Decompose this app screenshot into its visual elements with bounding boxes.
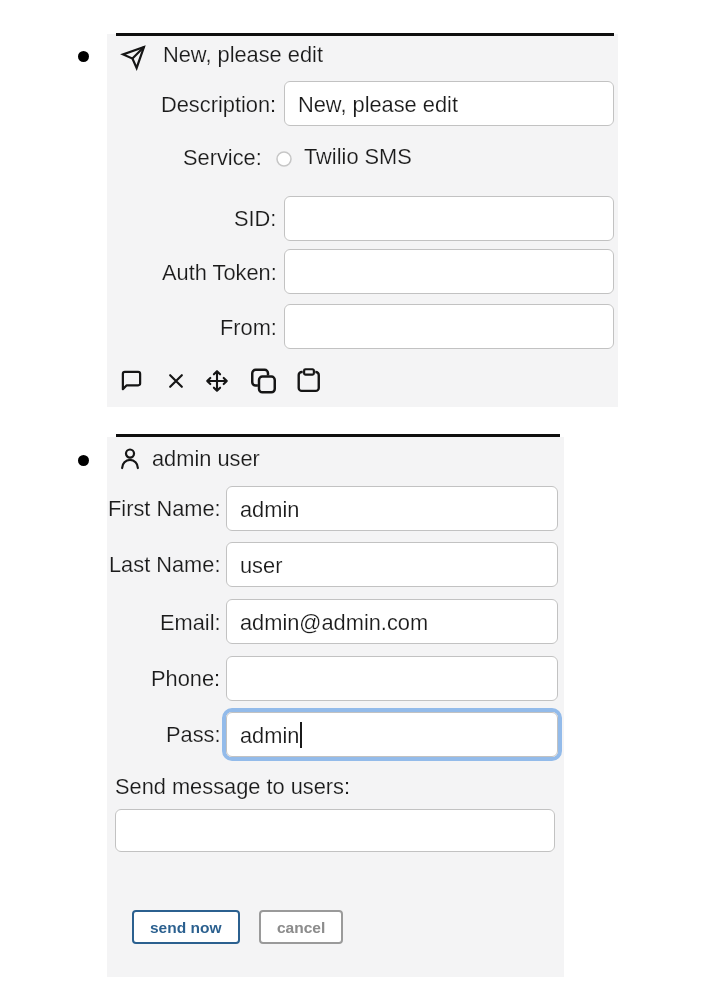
staticText: admin: [240, 723, 300, 747]
button[interactable]: [115, 809, 555, 852]
button[interactable]: New, please edit: [284, 81, 614, 126]
button[interactable]: [296, 366, 322, 392]
staticText: From:: [220, 315, 277, 339]
staticText: Auth Token:: [162, 260, 277, 284]
button[interactable]: user: [226, 542, 558, 587]
staticText: Description:: [161, 92, 277, 116]
staticText: Last Name:: [109, 552, 221, 576]
button[interactable]: cancel: [259, 910, 343, 944]
button[interactable]: [205, 369, 229, 393]
staticText: New, please edit: [163, 42, 323, 66]
button[interactable]: [284, 249, 614, 294]
staticText: send now: [150, 919, 222, 936]
button[interactable]: send now: [132, 910, 240, 944]
button[interactable]: [120, 369, 143, 392]
staticText: Pass:: [166, 722, 221, 746]
staticText: admin: [240, 497, 300, 521]
button[interactable]: [166, 371, 186, 391]
staticText: Phone:: [151, 666, 221, 690]
staticText: admin user: [152, 446, 260, 470]
button[interactable]: admin@admin.com: [226, 599, 558, 644]
button[interactable]: admin: [226, 712, 558, 757]
staticText: Send message to users:: [115, 774, 351, 798]
button[interactable]: admin: [226, 486, 558, 531]
button[interactable]: [121, 45, 146, 70]
staticText: Twilio SMS: [304, 144, 412, 168]
button[interactable]: [284, 304, 614, 349]
button[interactable]: [250, 367, 277, 394]
staticText: Email:: [160, 610, 221, 634]
staticText: cancel: [277, 919, 326, 936]
staticText: First Name:: [108, 496, 221, 520]
button[interactable]: [226, 656, 558, 701]
staticText: New, please edit: [298, 92, 458, 116]
button[interactable]: [276, 151, 292, 167]
staticText: user: [240, 553, 283, 577]
staticText: SID:: [234, 206, 277, 230]
button[interactable]: [284, 196, 614, 241]
staticText: admin@admin.com: [240, 610, 429, 634]
staticText: Service:: [183, 145, 262, 169]
